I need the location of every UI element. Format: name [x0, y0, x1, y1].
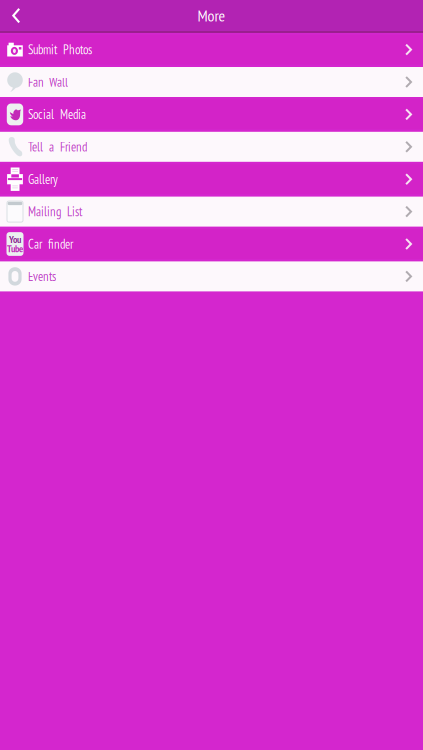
staticText: Submit Photos [28, 41, 92, 58]
staticText: Tube [7, 242, 23, 255]
button[interactable]: Social Media [0, 99, 423, 129]
staticText: More [197, 5, 225, 26]
button[interactable]: Events [0, 261, 423, 291]
button[interactable]: Submit Photos [0, 35, 423, 65]
button[interactable]: Fan Wall [0, 67, 423, 97]
staticText: Social Media [28, 106, 86, 123]
staticText: Events [28, 268, 56, 285]
button[interactable]: Tell a Friend [0, 132, 423, 162]
staticText: You [9, 233, 21, 246]
staticText: Fan Wall [28, 74, 68, 90]
button[interactable]: Mailing List [0, 197, 423, 227]
staticText: Mailing List [28, 203, 82, 220]
button[interactable]: You [0, 229, 423, 259]
staticText: Car finder [28, 236, 73, 252]
button[interactable]: Back [0, 0, 30, 31]
staticText: Tell a Friend [28, 139, 87, 155]
button[interactable]: Gallery [0, 164, 423, 194]
staticText: Gallery [28, 171, 58, 187]
